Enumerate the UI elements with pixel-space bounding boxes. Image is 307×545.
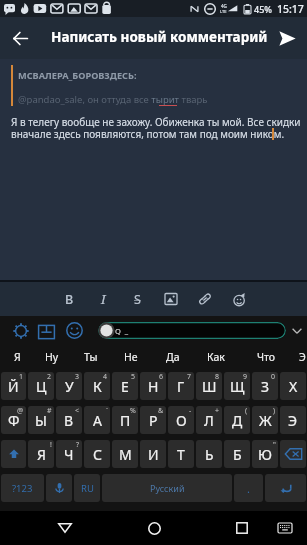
- staticText: <: [75, 406, 80, 416]
- button[interactable]: Clipboard: [33, 316, 59, 345]
- button[interactable]: Language: [74, 474, 100, 502]
- button[interactable]: Bold: [52, 282, 86, 316]
- button[interactable]: Back: [1, 19, 39, 57]
- button[interactable]: Recents: [222, 511, 262, 545]
- button[interactable]: Й: [1, 372, 26, 400]
- button[interactable]: Emoji: [222, 282, 256, 316]
- button[interactable]: Ы: [28, 406, 54, 434]
- button[interactable]: Б: [224, 440, 250, 468]
- button[interactable]: Ю: [252, 440, 278, 468]
- staticText: 2: [47, 372, 52, 382]
- button[interactable]: Voice input: [46, 474, 72, 502]
- button[interactable]: К: [84, 372, 110, 400]
- button[interactable]: Ь: [196, 440, 222, 468]
- button[interactable]: Italic: [86, 282, 120, 316]
- staticText: Ы: [35, 411, 47, 430]
- button[interactable]: И: [140, 440, 166, 468]
- button[interactable]: Ц: [28, 372, 54, 400]
- staticText: Э: [288, 411, 298, 430]
- staticText: RU: [81, 482, 94, 495]
- staticText: С: [93, 445, 102, 464]
- staticText: ": [273, 440, 276, 450]
- staticText: 6: [159, 372, 164, 382]
- staticText: 4: [103, 372, 108, 382]
- button[interactable]: Search: [98, 322, 286, 339]
- button[interactable]: Р: [140, 406, 166, 434]
- button[interactable]: Keyboard: [268, 511, 302, 545]
- button[interactable]: Strikethrough: [120, 282, 154, 316]
- button[interactable]: Shift: [1, 440, 26, 468]
- staticText: ?: [76, 440, 80, 450]
- button[interactable]: Е: [112, 372, 138, 400]
- button[interactable]: З: [252, 372, 278, 400]
- staticText: Что: [257, 350, 276, 364]
- button[interactable]: Back: [45, 511, 85, 545]
- button[interactable]: Period: [234, 474, 263, 502]
- button[interactable]: Ты: [73, 345, 109, 369]
- button[interactable]: Image: [154, 282, 188, 316]
- staticText: Ф: [8, 411, 20, 430]
- staticText: Ц: [36, 377, 47, 396]
- button[interactable]: Щ: [224, 372, 250, 400]
- staticText: 5: [131, 372, 136, 382]
- staticText: Н: [148, 377, 159, 396]
- button[interactable]: Ш: [196, 372, 222, 400]
- staticText: Я: [14, 350, 21, 364]
- staticText: Е: [121, 377, 129, 396]
- staticText: @: [17, 406, 24, 416]
- button[interactable]: Я: [0, 345, 35, 369]
- button[interactable]: Expand: [286, 316, 307, 345]
- staticText: Л: [204, 411, 214, 430]
- button[interactable]: Л: [196, 406, 222, 434]
- staticText: 3: [75, 372, 80, 382]
- button[interactable]: Emoji: [61, 316, 87, 345]
- button[interactable]: Не: [113, 345, 149, 369]
- staticText: Э: [299, 350, 306, 364]
- button[interactable]: Да: [155, 345, 191, 369]
- button[interactable]: О: [168, 406, 194, 434]
- staticText: Ю: [258, 445, 272, 464]
- button[interactable]: С: [84, 440, 110, 468]
- button[interactable]: Д: [224, 406, 250, 434]
- button[interactable]: Г: [168, 372, 194, 400]
- staticText: Р: [149, 411, 158, 430]
- staticText: 9: [243, 372, 248, 382]
- button[interactable]: Ну: [34, 345, 70, 369]
- staticText: Написать новый комментарий: [51, 28, 268, 46]
- button[interactable]: Как: [198, 345, 234, 369]
- button[interactable]: В: [56, 406, 82, 434]
- button[interactable]: Settings: [8, 316, 34, 345]
- button[interactable]: У: [56, 372, 82, 400]
- staticText: Щ: [230, 377, 245, 396]
- button[interactable]: Send: [268, 19, 306, 57]
- staticText: 8: [215, 372, 220, 382]
- button[interactable]: Home: [134, 511, 174, 545]
- button[interactable]: Н: [140, 372, 166, 400]
- staticText: Д: [232, 411, 243, 430]
- staticText: З: [261, 377, 270, 396]
- button[interactable]: Enter: [265, 474, 306, 502]
- button[interactable]: Х: [280, 372, 306, 400]
- staticText: +: [215, 406, 220, 416]
- button[interactable]: Ч: [56, 440, 82, 468]
- button[interactable]: Ф: [1, 406, 26, 434]
- staticText: Г: [177, 377, 185, 396]
- staticText: П: [120, 411, 131, 430]
- staticText: 1: [19, 372, 24, 382]
- button[interactable]: П: [112, 406, 138, 434]
- staticText: `: [106, 406, 108, 416]
- staticText: Й: [8, 377, 19, 396]
- button[interactable]: М: [112, 440, 138, 468]
- button[interactable]: А: [84, 406, 110, 434]
- button[interactable]: Что: [248, 345, 284, 369]
- button[interactable]: Symbols: [1, 474, 44, 502]
- button[interactable]: Я: [28, 440, 54, 468]
- staticText: А: [93, 411, 102, 430]
- button[interactable]: Space: [102, 474, 232, 502]
- button[interactable]: Ж: [252, 406, 278, 434]
- staticText: 15:17: [277, 2, 304, 16]
- button[interactable]: Link: [188, 282, 222, 316]
- button[interactable]: Э: [280, 406, 306, 434]
- button[interactable]: Backspace: [280, 440, 306, 468]
- button[interactable]: Т: [168, 440, 194, 468]
